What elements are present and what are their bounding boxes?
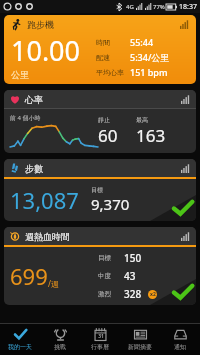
- other: My Day: [14, 328, 27, 341]
- staticText: 699: [10, 261, 48, 291]
- button[interactable]: Challenges: [40, 324, 80, 355]
- staticText: 18:37: [179, 2, 197, 12]
- other: Calendar: [94, 328, 107, 341]
- button[interactable]: Notifications: [160, 324, 200, 355]
- button[interactable]: 心率: [4, 90, 196, 153]
- button[interactable]: 跑步機: [4, 15, 196, 84]
- staticText: 通知: [174, 343, 186, 351]
- staticText: 跑步機: [27, 19, 54, 30]
- staticText: 靜止: [98, 116, 110, 124]
- staticText: 55:44: [130, 36, 154, 48]
- staticText: 4G: [126, 3, 134, 11]
- other: Challenges: [54, 328, 67, 341]
- staticText: 13,087: [10, 185, 79, 215]
- staticText: 10.00: [11, 32, 81, 69]
- button[interactable]: My Day: [0, 324, 40, 355]
- staticText: 目標: [98, 254, 124, 262]
- staticText: 31: [98, 333, 104, 340]
- staticText: 目標: [91, 186, 103, 194]
- staticText: 163: [136, 124, 166, 147]
- staticText: 77%: [153, 3, 165, 11]
- button[interactable]: 步數: [4, 159, 196, 221]
- staticText: 中度: [98, 272, 124, 280]
- staticText: 151 bpm: [130, 66, 168, 78]
- other: News feed: [134, 328, 147, 341]
- staticText: x2: [150, 291, 156, 298]
- staticText: 激烈: [98, 290, 124, 298]
- staticText: /週: [48, 278, 59, 289]
- button[interactable]: 週熱血時間: [4, 227, 196, 305]
- staticText: 我的一天: [8, 343, 32, 351]
- staticText: 週熱血時間: [25, 231, 70, 242]
- staticText: 9,370: [91, 194, 130, 214]
- staticText: 前 4 個小時: [10, 114, 41, 122]
- staticText: 328: [124, 287, 148, 301]
- staticText: 行事曆: [91, 343, 109, 351]
- staticText: 60: [98, 124, 118, 147]
- staticText: 時間: [96, 38, 130, 47]
- staticText: 挑戰: [54, 343, 66, 351]
- staticText: 步數: [25, 163, 43, 174]
- staticText: 心率: [25, 94, 43, 105]
- staticText: 新聞摘要: [128, 343, 152, 351]
- staticText: 43: [124, 269, 148, 283]
- staticText: 公里: [11, 69, 29, 80]
- staticText: 最高: [136, 116, 148, 124]
- button[interactable]: News feed: [120, 324, 160, 355]
- staticText: 平均心率: [96, 68, 130, 77]
- button[interactable]: Calendar: [80, 324, 120, 355]
- staticText: 150: [124, 251, 148, 265]
- staticText: 配速: [96, 53, 130, 62]
- staticText: 5:34/公里: [130, 51, 170, 63]
- other: Notifications: [174, 328, 187, 341]
